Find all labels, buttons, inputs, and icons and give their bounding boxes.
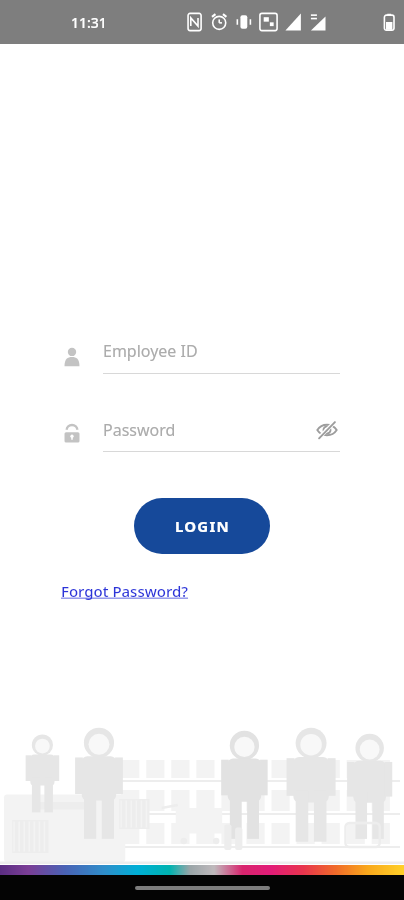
button[interactable]: Forgot Password? <box>61 577 189 605</box>
staticText: Password <box>103 419 314 441</box>
button[interactable]: Employee ID <box>0 337 404 377</box>
button[interactable]: LOGIN <box>134 498 270 554</box>
staticText: Forgot Password? <box>61 581 189 601</box>
button[interactable]: Password <box>0 414 404 454</box>
staticText: 11:31 <box>71 13 107 32</box>
button[interactable]: Show password <box>314 417 340 443</box>
staticText: Employee ID <box>103 340 198 362</box>
staticText: LOGIN <box>175 516 230 536</box>
